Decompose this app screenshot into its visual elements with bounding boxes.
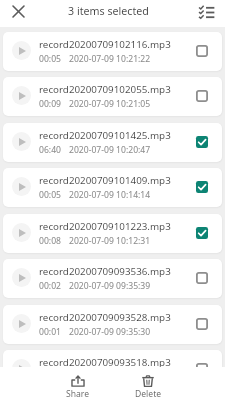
staticText: 00:01 [39,326,61,338]
staticText: 2020-07-09 10:12:31 [69,235,151,247]
button[interactable]: Delete [113,367,183,400]
button[interactable]: Play [12,132,31,151]
button[interactable]: Play [12,314,31,333]
button[interactable]: Not selected [193,360,211,378]
staticText: 00:05 [39,189,61,201]
staticText: 2020-07-09 10:20:47 [69,144,151,156]
staticText: 2020-07-09 10:21:05 [69,98,151,110]
staticText: 2020-07-09 10:14:14 [69,189,151,201]
button[interactable]: Selected [193,133,211,151]
button[interactable]: Play [3,350,222,389]
button[interactable]: Play [12,223,31,242]
button[interactable]: Play [3,77,222,116]
staticText: 2020-07-09 10:21:22 [69,53,151,65]
button[interactable]: Not selected [193,269,211,287]
staticText: Delete [135,388,162,400]
staticText: 00:09 [39,98,61,110]
button[interactable]: Not selected [193,42,211,60]
staticText: 00:05 [39,53,61,65]
button[interactable]: Play [3,305,222,344]
staticText: Share [66,388,90,400]
button[interactable]: Not selected [193,315,211,333]
button[interactable]: Play [3,168,222,207]
button[interactable]: Select all [189,0,225,25]
staticText: record20200709102055.mp3 [39,83,171,96]
staticText: 2020-07-09 09:35:30 [69,326,151,338]
staticText: record20200709102116.mp3 [39,38,171,51]
staticText: 3 items selected [68,4,149,19]
button[interactable]: Selected [193,224,211,242]
staticText: record20200709093518.mp3 [39,356,171,369]
staticText: record20200709101223.mp3 [39,220,171,233]
staticText: 00:02 [39,280,61,292]
button[interactable]: Play [3,32,222,71]
staticText: record20200709093536.mp3 [39,265,171,278]
button[interactable]: Play [12,86,31,105]
button[interactable]: Share [43,367,113,400]
button[interactable]: Play [12,359,31,378]
button[interactable]: Play [12,41,31,60]
button[interactable]: Play [12,268,31,287]
button[interactable]: Selected [193,178,211,196]
button[interactable]: Close [0,0,36,25]
staticText: 00:08 [39,235,61,247]
staticText: 2020-07-09 09:35:20 [69,371,151,383]
staticText: record20200709101425.mp3 [39,129,171,142]
button[interactable]: Play [3,214,222,253]
staticText: 06:40 [39,144,61,156]
staticText: record20200709101409.mp3 [39,174,171,187]
staticText: record20200709093528.mp3 [39,311,171,324]
button[interactable]: Play [3,259,222,298]
button[interactable]: Not selected [193,87,211,105]
staticText: 2020-07-09 09:35:39 [69,280,151,292]
button[interactable]: Play [12,177,31,196]
button[interactable]: Play [3,123,222,162]
